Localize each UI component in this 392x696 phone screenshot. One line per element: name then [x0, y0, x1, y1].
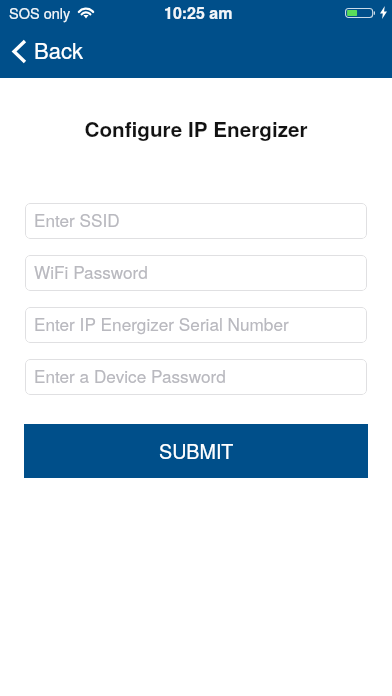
- staticText: Configure IP Energizer: [0, 114, 392, 144]
- button[interactable]: Enter a Device Password: [25, 359, 367, 395]
- staticText: 10:25 am: [164, 1, 233, 24]
- button[interactable]: WiFi Password: [25, 255, 367, 291]
- other: Back: [12, 39, 27, 64]
- staticText: Enter IP Energizer Serial Number: [34, 311, 289, 336]
- other: Battery: [345, 8, 375, 18]
- staticText: WiFi Password: [34, 259, 148, 284]
- other: Wi-Fi: [79, 7, 93, 18]
- staticText: SUBMIT: [159, 436, 234, 464]
- staticText: Enter a Device Password: [34, 363, 226, 388]
- other: Charging: [380, 6, 387, 19]
- staticText: Enter SSID: [34, 207, 120, 232]
- button[interactable]: Enter SSID: [25, 203, 367, 239]
- staticText: Back: [34, 34, 84, 66]
- staticText: SOS only: [9, 2, 71, 23]
- button[interactable]: Enter IP Energizer Serial Number: [25, 307, 367, 343]
- button[interactable]: Back: [8, 31, 92, 71]
- button[interactable]: SUBMIT: [24, 424, 368, 478]
